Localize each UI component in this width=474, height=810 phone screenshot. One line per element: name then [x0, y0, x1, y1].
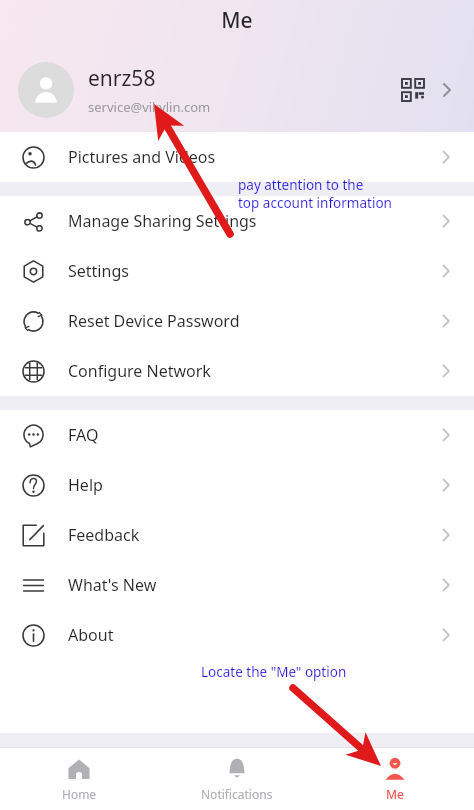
staticText: Home [62, 786, 97, 802]
staticText: Locate the "Me" option [201, 663, 347, 681]
staticText: About [68, 624, 438, 646]
button[interactable]: enrz58 [0, 62, 474, 118]
button[interactable]: FAQ [0, 410, 474, 460]
button[interactable]: Settings [0, 246, 474, 296]
button[interactable]: Reset Device Password [0, 296, 474, 346]
staticText: Manage Sharing Settings [68, 210, 438, 232]
staticText: Reset Device Password [68, 310, 438, 332]
button[interactable]: Manage Sharing Settings [0, 196, 474, 246]
button[interactable]: Feedback [0, 510, 474, 560]
staticText: What's New [68, 574, 438, 596]
button[interactable]: What's New [0, 560, 474, 610]
staticText: Configure Network [68, 360, 438, 382]
button[interactable]: About [0, 610, 474, 660]
button[interactable]: Pictures and Videos [0, 132, 474, 182]
button[interactable]: Notifications [158, 748, 316, 810]
button[interactable]: Home [0, 748, 158, 810]
staticText: FAQ [68, 424, 438, 446]
button[interactable]: Help [0, 460, 474, 510]
staticText: top account information [238, 194, 392, 212]
staticText: Me [386, 786, 404, 802]
staticText: pay attention to the [238, 176, 364, 194]
staticText: Pictures and Videos [68, 146, 438, 168]
staticText: Feedback [68, 524, 438, 546]
staticText: Help [68, 474, 438, 496]
staticText: Settings [68, 260, 438, 282]
staticText: Me [221, 6, 253, 35]
staticText: service@vikylin.com [88, 98, 211, 116]
button[interactable]: Me [316, 748, 474, 810]
staticText: Notifications [201, 786, 273, 802]
staticText: enrz58 [88, 64, 156, 93]
button[interactable]: Show QR code [396, 73, 430, 107]
button[interactable]: Configure Network [0, 346, 474, 396]
